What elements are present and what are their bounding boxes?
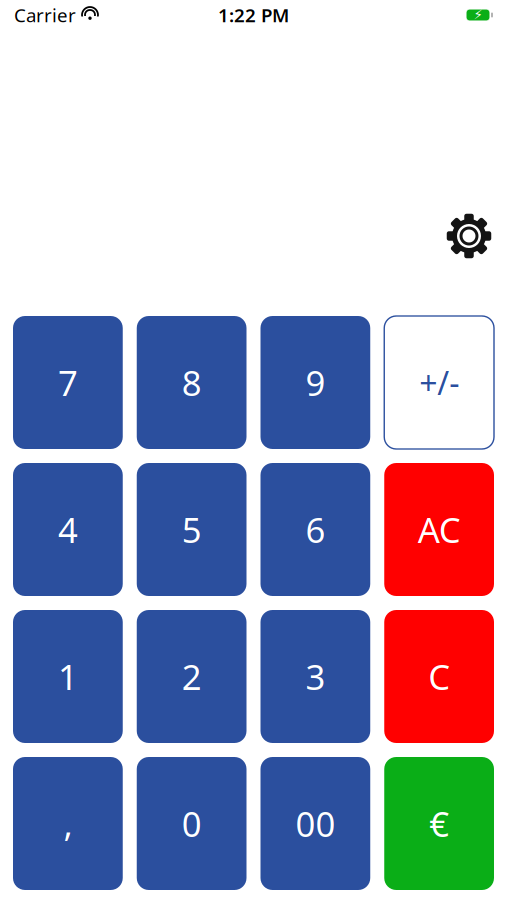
- staticText: 00: [295, 800, 335, 846]
- button[interactable]: +/-: [384, 316, 494, 449]
- staticText: 1: [58, 653, 78, 699]
- staticText: €: [429, 800, 449, 846]
- staticText: 4: [58, 506, 78, 552]
- button[interactable]: €: [384, 757, 494, 890]
- staticText: ,: [63, 800, 72, 846]
- button[interactable]: Settings: [444, 211, 494, 261]
- button[interactable]: AC: [384, 463, 494, 596]
- button[interactable]: C: [384, 610, 494, 743]
- button[interactable]: ,: [13, 757, 123, 890]
- staticText: 0: [182, 800, 202, 846]
- button[interactable]: 7: [13, 316, 123, 449]
- staticText: AC: [418, 506, 461, 552]
- staticText: 3: [305, 653, 325, 699]
- button[interactable]: 6: [260, 463, 370, 596]
- staticText: Carrier: [14, 3, 76, 27]
- staticText: 5: [182, 506, 202, 552]
- button[interactable]: 0: [137, 757, 247, 890]
- button[interactable]: 2: [137, 610, 247, 743]
- staticText: C: [428, 653, 450, 699]
- staticText: 7: [58, 359, 78, 405]
- staticText: ⚡︎: [473, 7, 482, 22]
- button[interactable]: 3: [260, 610, 370, 743]
- staticText: 6: [305, 506, 325, 552]
- button[interactable]: 5: [137, 463, 247, 596]
- staticText: 2: [182, 653, 202, 699]
- staticText: 9: [305, 359, 325, 405]
- button[interactable]: 4: [13, 463, 123, 596]
- staticText: 1:22 PM: [218, 3, 289, 27]
- staticText: +/-: [419, 361, 459, 404]
- staticText: 8: [182, 359, 202, 405]
- button[interactable]: 1: [13, 610, 123, 743]
- button[interactable]: 8: [137, 316, 247, 449]
- button[interactable]: 9: [260, 316, 370, 449]
- button[interactable]: 00: [260, 757, 370, 890]
